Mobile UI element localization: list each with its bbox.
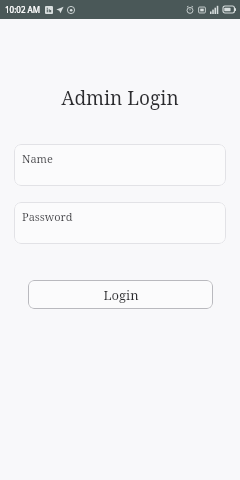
button[interactable]: Name	[14, 144, 226, 186]
staticText: Name	[22, 151, 53, 166]
staticText: Password	[22, 209, 73, 224]
staticText: 10:02 AM	[5, 4, 41, 15]
button[interactable]: Login	[28, 280, 213, 309]
button[interactable]: Password	[14, 202, 226, 244]
staticText: Login	[103, 286, 139, 304]
staticText: Admin Login	[61, 85, 179, 111]
